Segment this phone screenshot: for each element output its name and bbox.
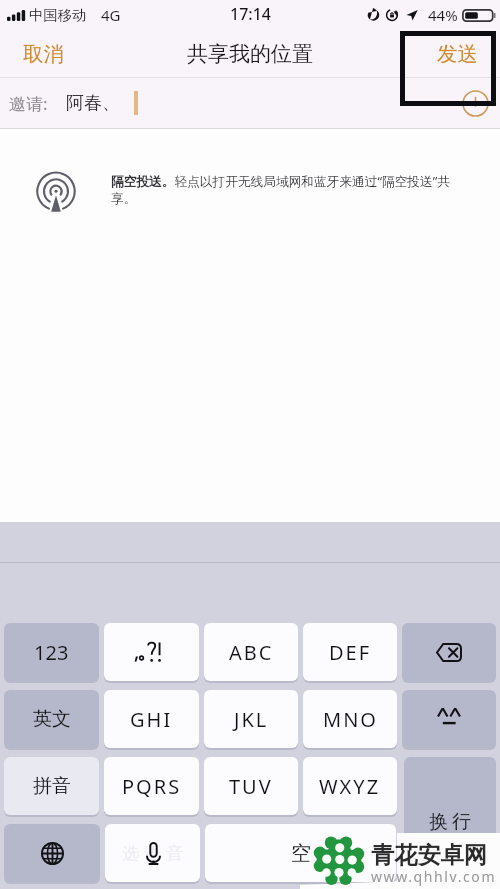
button[interactable]: 换行	[404, 757, 496, 884]
staticText: ABC	[229, 639, 274, 666]
staticText: 123	[34, 639, 69, 666]
staticText: JKL	[234, 706, 269, 733]
staticText: 英文	[33, 707, 71, 731]
staticText: 空	[291, 841, 311, 866]
button[interactable]: 拼音	[4, 757, 99, 815]
button[interactable]: JKL	[204, 690, 298, 748]
staticText: 发送	[437, 41, 478, 67]
button[interactable]: TUV	[204, 757, 298, 815]
staticText: 换行	[427, 810, 473, 834]
staticText: 中国移动	[29, 6, 87, 24]
staticText: www.qhhlv.com	[371, 867, 497, 886]
button[interactable]: 取消	[0, 33, 79, 75]
staticText: 阿春、	[66, 92, 120, 115]
staticText: MNO	[323, 706, 378, 733]
button[interactable]: 英文	[4, 690, 99, 748]
button[interactable]: 123	[4, 623, 99, 681]
staticText: TUV	[229, 773, 273, 800]
staticText: GHI	[130, 706, 173, 733]
staticText: 取消	[23, 41, 64, 67]
staticText: 选语音	[120, 843, 186, 864]
staticText: 4G	[101, 5, 121, 25]
button[interactable]: Delete	[402, 623, 496, 681]
button[interactable]: Voice input	[104, 623, 199, 681]
staticText: PQRS	[122, 773, 182, 800]
staticText: 17:14	[230, 3, 271, 25]
staticText: 青花安卓网	[371, 841, 487, 870]
button[interactable]: DEF	[303, 623, 397, 681]
button[interactable]: PQRS	[104, 757, 199, 815]
button[interactable]: Change keyboard	[4, 824, 100, 882]
staticText: WXYZ	[319, 773, 381, 800]
button[interactable]: Voice input	[105, 824, 200, 882]
staticText: 拼音	[33, 774, 71, 798]
button[interactable]: GHI	[104, 690, 199, 748]
staticText: 共享我的位置	[187, 41, 313, 67]
button[interactable]: 空	[205, 824, 396, 882]
button[interactable]: 发送	[422, 33, 500, 75]
staticText: 邀请:	[9, 92, 48, 115]
staticText: 隔空投送。轻点以打开无线局域网和蓝牙来通过“隔空投送”共享。	[111, 172, 467, 207]
button[interactable]: ABC	[204, 623, 298, 681]
button[interactable]: MNO	[303, 690, 397, 748]
staticText: 44%	[428, 5, 458, 25]
button[interactable]: Voice input	[402, 690, 496, 748]
button[interactable]: WXYZ	[303, 757, 397, 815]
staticText: DEF	[329, 639, 372, 666]
